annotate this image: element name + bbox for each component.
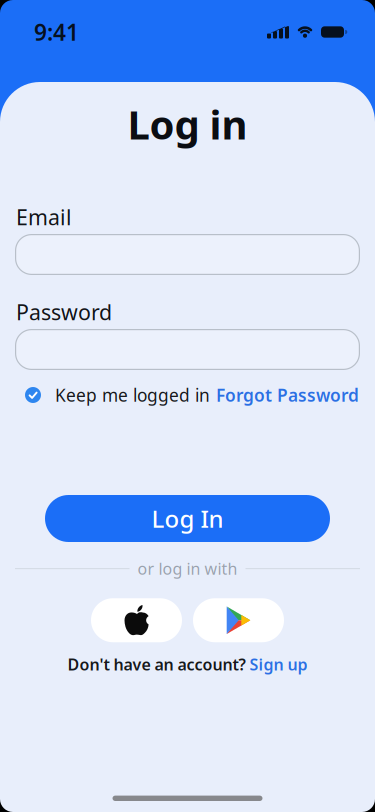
button[interactable]: Forgot Password: [216, 383, 359, 406]
staticText: Don't have an account?: [67, 654, 245, 675]
button[interactable]: Keep me logged in: [25, 383, 210, 406]
staticText: Log In: [151, 503, 223, 534]
button[interactable]: Log In: [45, 495, 330, 542]
staticText: or log in with: [137, 558, 237, 579]
staticText: Forgot Password: [216, 383, 359, 406]
staticText: Keep me logged in: [55, 383, 210, 406]
staticText: Log in: [127, 97, 247, 150]
staticText: Password: [16, 298, 112, 326]
staticText: Email: [16, 203, 72, 231]
staticText: Sign up: [249, 654, 307, 675]
button[interactable]: Sign up: [249, 654, 307, 675]
button[interactable]: Log in with Google Play: [193, 598, 284, 642]
staticText: 9:41: [34, 17, 79, 47]
button[interactable]: Log in with Apple: [91, 598, 182, 642]
